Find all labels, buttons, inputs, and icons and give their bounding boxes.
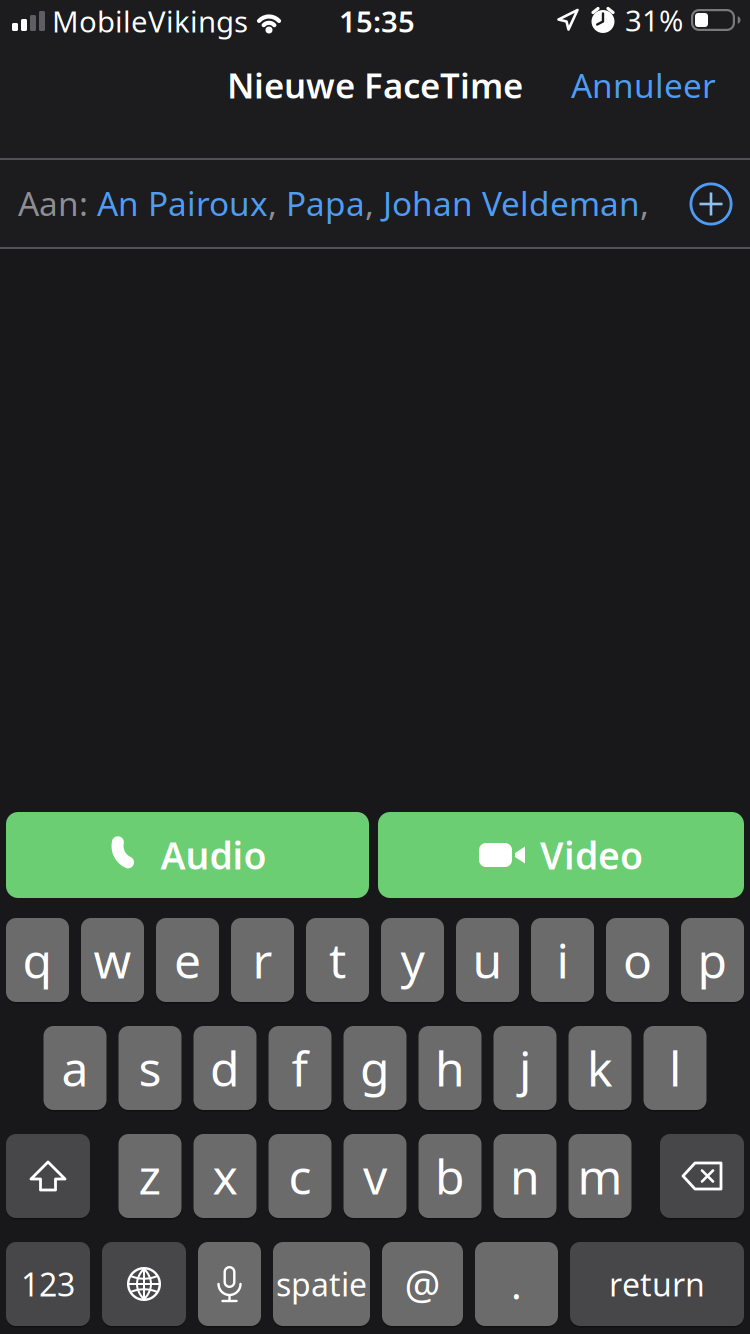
staticText: Nieuwe FaceTime <box>227 62 523 108</box>
staticText: h <box>435 1036 465 1100</box>
button[interactable] <box>6 1134 90 1218</box>
staticText: , <box>640 181 649 225</box>
staticText: w <box>93 928 131 992</box>
staticText: m <box>577 1144 622 1208</box>
staticText: , <box>268 181 286 225</box>
button[interactable]: f <box>268 1026 331 1110</box>
button[interactable]: s <box>118 1026 181 1110</box>
button[interactable]: Audio <box>6 812 369 898</box>
staticText: 123 <box>21 1263 75 1305</box>
staticText: MobileVikings <box>52 1 248 40</box>
button[interactable]: i <box>531 918 594 1002</box>
staticText: u <box>472 928 502 992</box>
button[interactable]: w <box>81 918 144 1002</box>
staticText: i <box>556 928 568 992</box>
staticText: return <box>609 1263 705 1305</box>
staticText: e <box>174 928 201 992</box>
button[interactable]: Annuleer <box>571 63 716 107</box>
button[interactable]: g <box>343 1026 406 1110</box>
staticText: Aan: <box>18 181 97 225</box>
staticText: Annuleer <box>571 63 716 107</box>
button[interactable]: q <box>6 918 69 1002</box>
button[interactable]: r <box>231 918 294 1002</box>
staticText: v <box>363 1144 387 1208</box>
staticText: d <box>210 1036 240 1100</box>
button[interactable]: m <box>568 1134 631 1218</box>
staticText: b <box>435 1144 465 1208</box>
button[interactable]: u <box>456 918 519 1002</box>
button[interactable]: y <box>381 918 444 1002</box>
staticText: spatie <box>276 1263 367 1305</box>
button[interactable]: c <box>268 1134 331 1218</box>
staticText: t <box>329 928 346 992</box>
button[interactable] <box>689 182 732 225</box>
button[interactable]: n <box>493 1134 556 1218</box>
staticText: @ <box>404 1257 440 1310</box>
staticText: f <box>291 1036 308 1100</box>
staticText: 31% <box>625 0 683 39</box>
button[interactable]: @ <box>382 1242 463 1326</box>
staticText: Video <box>540 830 643 880</box>
button[interactable]: t <box>306 918 369 1002</box>
staticText: q <box>22 928 52 992</box>
button[interactable]: x <box>193 1134 256 1218</box>
staticText: x <box>212 1144 237 1208</box>
button[interactable] <box>198 1242 261 1326</box>
button[interactable]: Video <box>378 812 744 898</box>
button[interactable]: l <box>643 1026 706 1110</box>
button[interactable]: h <box>418 1026 481 1110</box>
button[interactable] <box>660 1134 744 1218</box>
staticText: o <box>623 928 652 992</box>
button[interactable]: j <box>493 1026 556 1110</box>
button[interactable]: b <box>418 1134 481 1218</box>
staticText: z <box>138 1144 161 1208</box>
button[interactable]: v <box>343 1134 406 1218</box>
staticText: n <box>510 1144 540 1208</box>
button[interactable]: e <box>156 918 219 1002</box>
button[interactable]: o <box>606 918 669 1002</box>
button[interactable]: a <box>43 1026 106 1110</box>
button[interactable] <box>102 1242 186 1326</box>
staticText: r <box>252 928 272 992</box>
staticText: An Pairoux <box>97 181 268 225</box>
staticText: . <box>511 1257 522 1310</box>
staticText: l <box>669 1036 681 1100</box>
button[interactable]: 123 <box>6 1242 90 1326</box>
button[interactable]: k <box>568 1026 631 1110</box>
staticText: j <box>519 1036 531 1100</box>
staticText: Johan Veldeman <box>383 181 640 225</box>
staticText: p <box>697 928 727 992</box>
staticText: g <box>360 1036 390 1100</box>
button[interactable]: . <box>475 1242 558 1326</box>
button[interactable]: p <box>681 918 744 1002</box>
staticText: , <box>365 181 383 225</box>
staticText: k <box>587 1036 613 1100</box>
button[interactable]: d <box>193 1026 256 1110</box>
staticText: Audio <box>160 830 266 880</box>
staticText: Papa <box>286 181 365 225</box>
staticText: 15:35 <box>339 1 415 40</box>
staticText: c <box>288 1144 311 1208</box>
staticText: y <box>400 928 424 992</box>
button[interactable]: z <box>118 1134 181 1218</box>
button[interactable]: return <box>570 1242 744 1326</box>
button[interactable]: spatie <box>273 1242 370 1326</box>
staticText: s <box>138 1036 161 1100</box>
staticText: a <box>61 1036 88 1100</box>
